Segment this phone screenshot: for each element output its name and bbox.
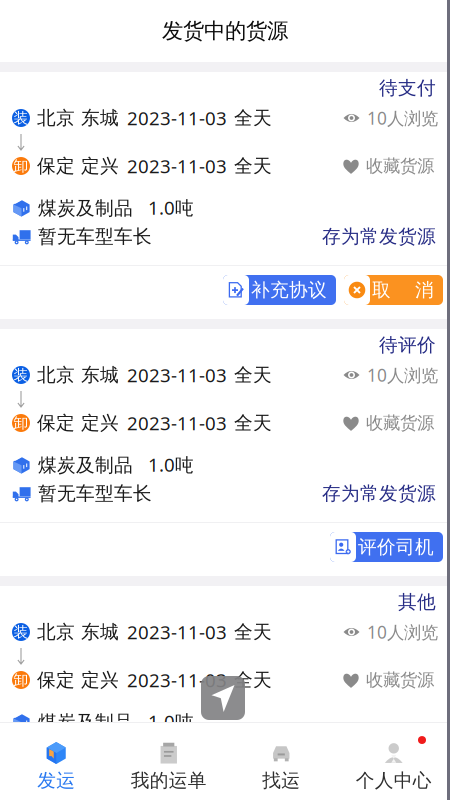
button[interactable]: 补充协议 bbox=[223, 275, 336, 305]
staticText: 全天 bbox=[234, 411, 272, 434]
staticText: 10人浏览 bbox=[367, 363, 438, 386]
staticText: 装 bbox=[13, 623, 28, 641]
staticText: 装 bbox=[13, 366, 28, 384]
button[interactable]: 浏览量 bbox=[343, 621, 438, 643]
button[interactable]: 发运 bbox=[0, 723, 112, 800]
button[interactable]: 找运 bbox=[225, 723, 337, 800]
button[interactable]: 收藏货源 bbox=[343, 155, 434, 177]
staticText: 2023-11-03 bbox=[127, 363, 227, 387]
staticText: 发货中的货源 bbox=[162, 18, 288, 44]
button[interactable]: 浏览量 bbox=[343, 364, 438, 386]
staticText: 存为常发货源 bbox=[322, 482, 436, 505]
staticText: 全天 bbox=[234, 620, 272, 643]
staticText: 暂无车型车长 bbox=[38, 225, 152, 248]
staticText: 评价司机 bbox=[358, 535, 434, 558]
staticText: 收藏货源 bbox=[366, 155, 434, 177]
staticText: 煤炭及制品 1.0吨 bbox=[38, 709, 194, 734]
staticText: 存为常发货源 bbox=[322, 225, 436, 248]
staticText: 10人浏览 bbox=[367, 620, 438, 643]
staticText: 找运 bbox=[262, 769, 300, 792]
button[interactable]: 存为常发货源 bbox=[322, 482, 436, 505]
staticText: 北京 东城 bbox=[37, 363, 119, 386]
button[interactable]: 存为常发货源 bbox=[322, 225, 436, 248]
staticText: 2023-11-03 bbox=[127, 154, 227, 178]
staticText: 存为常发货源 bbox=[322, 739, 436, 762]
staticText: 暂无车型车长 bbox=[38, 482, 152, 505]
staticText: 全天 bbox=[234, 106, 272, 129]
staticText: 2023-11-03 bbox=[127, 106, 227, 130]
staticText: 待支付 bbox=[379, 76, 436, 99]
staticText: 保定 定兴 bbox=[37, 668, 119, 691]
button[interactable]: 个人中心 bbox=[337, 723, 450, 800]
staticText: 收藏货源 bbox=[366, 412, 434, 434]
button[interactable]: 我的运单 bbox=[112, 723, 225, 800]
staticText: 发运 bbox=[37, 769, 75, 792]
staticText: 煤炭及制品 1.0吨 bbox=[38, 195, 194, 220]
button[interactable]: 存为常发货源 bbox=[322, 739, 436, 762]
button[interactable]: 收藏货源 bbox=[343, 412, 434, 434]
staticText: 全天 bbox=[234, 668, 272, 691]
staticText: 全天 bbox=[234, 363, 272, 386]
staticText: 个人中心 bbox=[356, 769, 432, 792]
staticText: 取 消 bbox=[372, 278, 434, 301]
staticText: 卸 bbox=[13, 157, 28, 175]
staticText: 2023-11-03 bbox=[127, 668, 227, 692]
button[interactable]: 收藏货源 bbox=[343, 669, 434, 691]
staticText: 2023-11-03 bbox=[127, 411, 227, 435]
staticText: 北京 东城 bbox=[37, 106, 119, 129]
staticText: 暂无车型车长 bbox=[38, 739, 152, 762]
button[interactable]: 取 消 bbox=[344, 275, 443, 305]
staticText: 其他 bbox=[398, 590, 436, 613]
staticText: 我的运单 bbox=[131, 769, 207, 792]
staticText: 收藏货源 bbox=[366, 669, 434, 691]
staticText: 全天 bbox=[234, 154, 272, 177]
staticText: 装 bbox=[13, 109, 28, 127]
staticText: 煤炭及制品 1.0吨 bbox=[38, 452, 194, 477]
button[interactable]: 评价司机 bbox=[330, 532, 443, 562]
staticText: 卸 bbox=[13, 671, 28, 689]
staticText: 保定 定兴 bbox=[37, 154, 119, 177]
staticText: 补充协议 bbox=[251, 278, 327, 301]
staticText: 10人浏览 bbox=[367, 106, 438, 129]
staticText: 2023-11-03 bbox=[127, 620, 227, 644]
button[interactable]: 浏览量 bbox=[343, 107, 438, 129]
staticText: 保定 定兴 bbox=[37, 411, 119, 434]
staticText: 卸 bbox=[13, 414, 28, 432]
staticText: 待评价 bbox=[379, 333, 436, 356]
staticText: 北京 东城 bbox=[37, 620, 119, 643]
